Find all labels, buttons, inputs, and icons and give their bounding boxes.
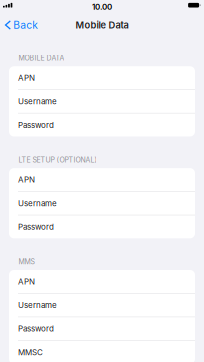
staticText: MOBILE DATA [18, 54, 64, 62]
staticText: Username [18, 300, 57, 310]
button[interactable]: Password [9, 317, 195, 340]
button[interactable]: APN [9, 270, 195, 293]
staticText: Username [18, 198, 57, 208]
staticText: APN [18, 277, 35, 286]
button[interactable]: Username [9, 90, 195, 113]
button[interactable]: Username [9, 192, 195, 215]
button[interactable]: Password [9, 215, 195, 238]
staticText: Password [18, 324, 54, 334]
staticText: Password [18, 120, 54, 130]
staticText: MMS [18, 257, 34, 266]
button[interactable]: APN [9, 66, 195, 89]
staticText: Username [18, 96, 57, 106]
staticText: 10.00 [92, 2, 112, 12]
button[interactable]: Username [9, 294, 195, 317]
staticText: Password [18, 222, 54, 232]
staticText: APN [18, 73, 35, 83]
staticText: Back [13, 19, 38, 31]
staticText: MMSC [18, 347, 43, 357]
button[interactable]: APN [9, 168, 195, 191]
staticText: LTE SETUP (OPTIONAL) [18, 156, 97, 164]
button[interactable]: MMSC [9, 341, 195, 362]
button[interactable]: Password [9, 113, 195, 136]
button[interactable]: Back [0, 16, 44, 34]
staticText: APN [18, 175, 35, 184]
staticText: Mobile Data [75, 19, 128, 31]
